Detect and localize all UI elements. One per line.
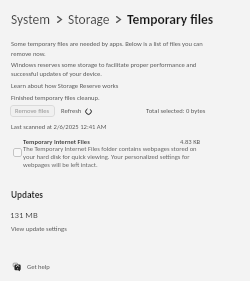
- staticText: Temporary Internet Files: [23, 138, 90, 146]
- staticText: The Temporary Internet Files folder cont…: [23, 145, 197, 169]
- other: Get help: [13, 263, 21, 271]
- staticText: Remove files: [15, 107, 50, 115]
- staticText: Get help: [27, 263, 50, 271]
- staticText: Some temporary files are needed by apps.…: [11, 40, 203, 58]
- button[interactable]: Refresh: [59, 105, 94, 117]
- staticText: Last scanned at 2/6/2025 12:41 AM: [11, 123, 107, 131]
- button[interactable]: Remove files: [10, 105, 55, 117]
- staticText: 4.83 KB: [180, 138, 201, 146]
- button[interactable]: System: [11, 11, 51, 27]
- staticText: Temporary files: [127, 11, 214, 27]
- staticText: Finished temporary files cleanup.: [11, 94, 100, 102]
- staticText: Refresh: [61, 107, 82, 115]
- button[interactable]: Get help: [13, 263, 50, 271]
- staticText: Total selected: 0 bytes: [146, 107, 206, 115]
- button[interactable]: View update settings: [11, 225, 67, 233]
- button[interactable]: Learn about how Storage Reserve works: [11, 82, 119, 90]
- staticText: Windows reserves some storage to facilit…: [11, 61, 197, 78]
- staticText: 131 MB: [10, 210, 38, 221]
- button[interactable]: Storage: [68, 11, 110, 27]
- button[interactable]: Select Temporary Internet Files: [13, 148, 22, 157]
- staticText: Updates: [11, 189, 44, 200]
